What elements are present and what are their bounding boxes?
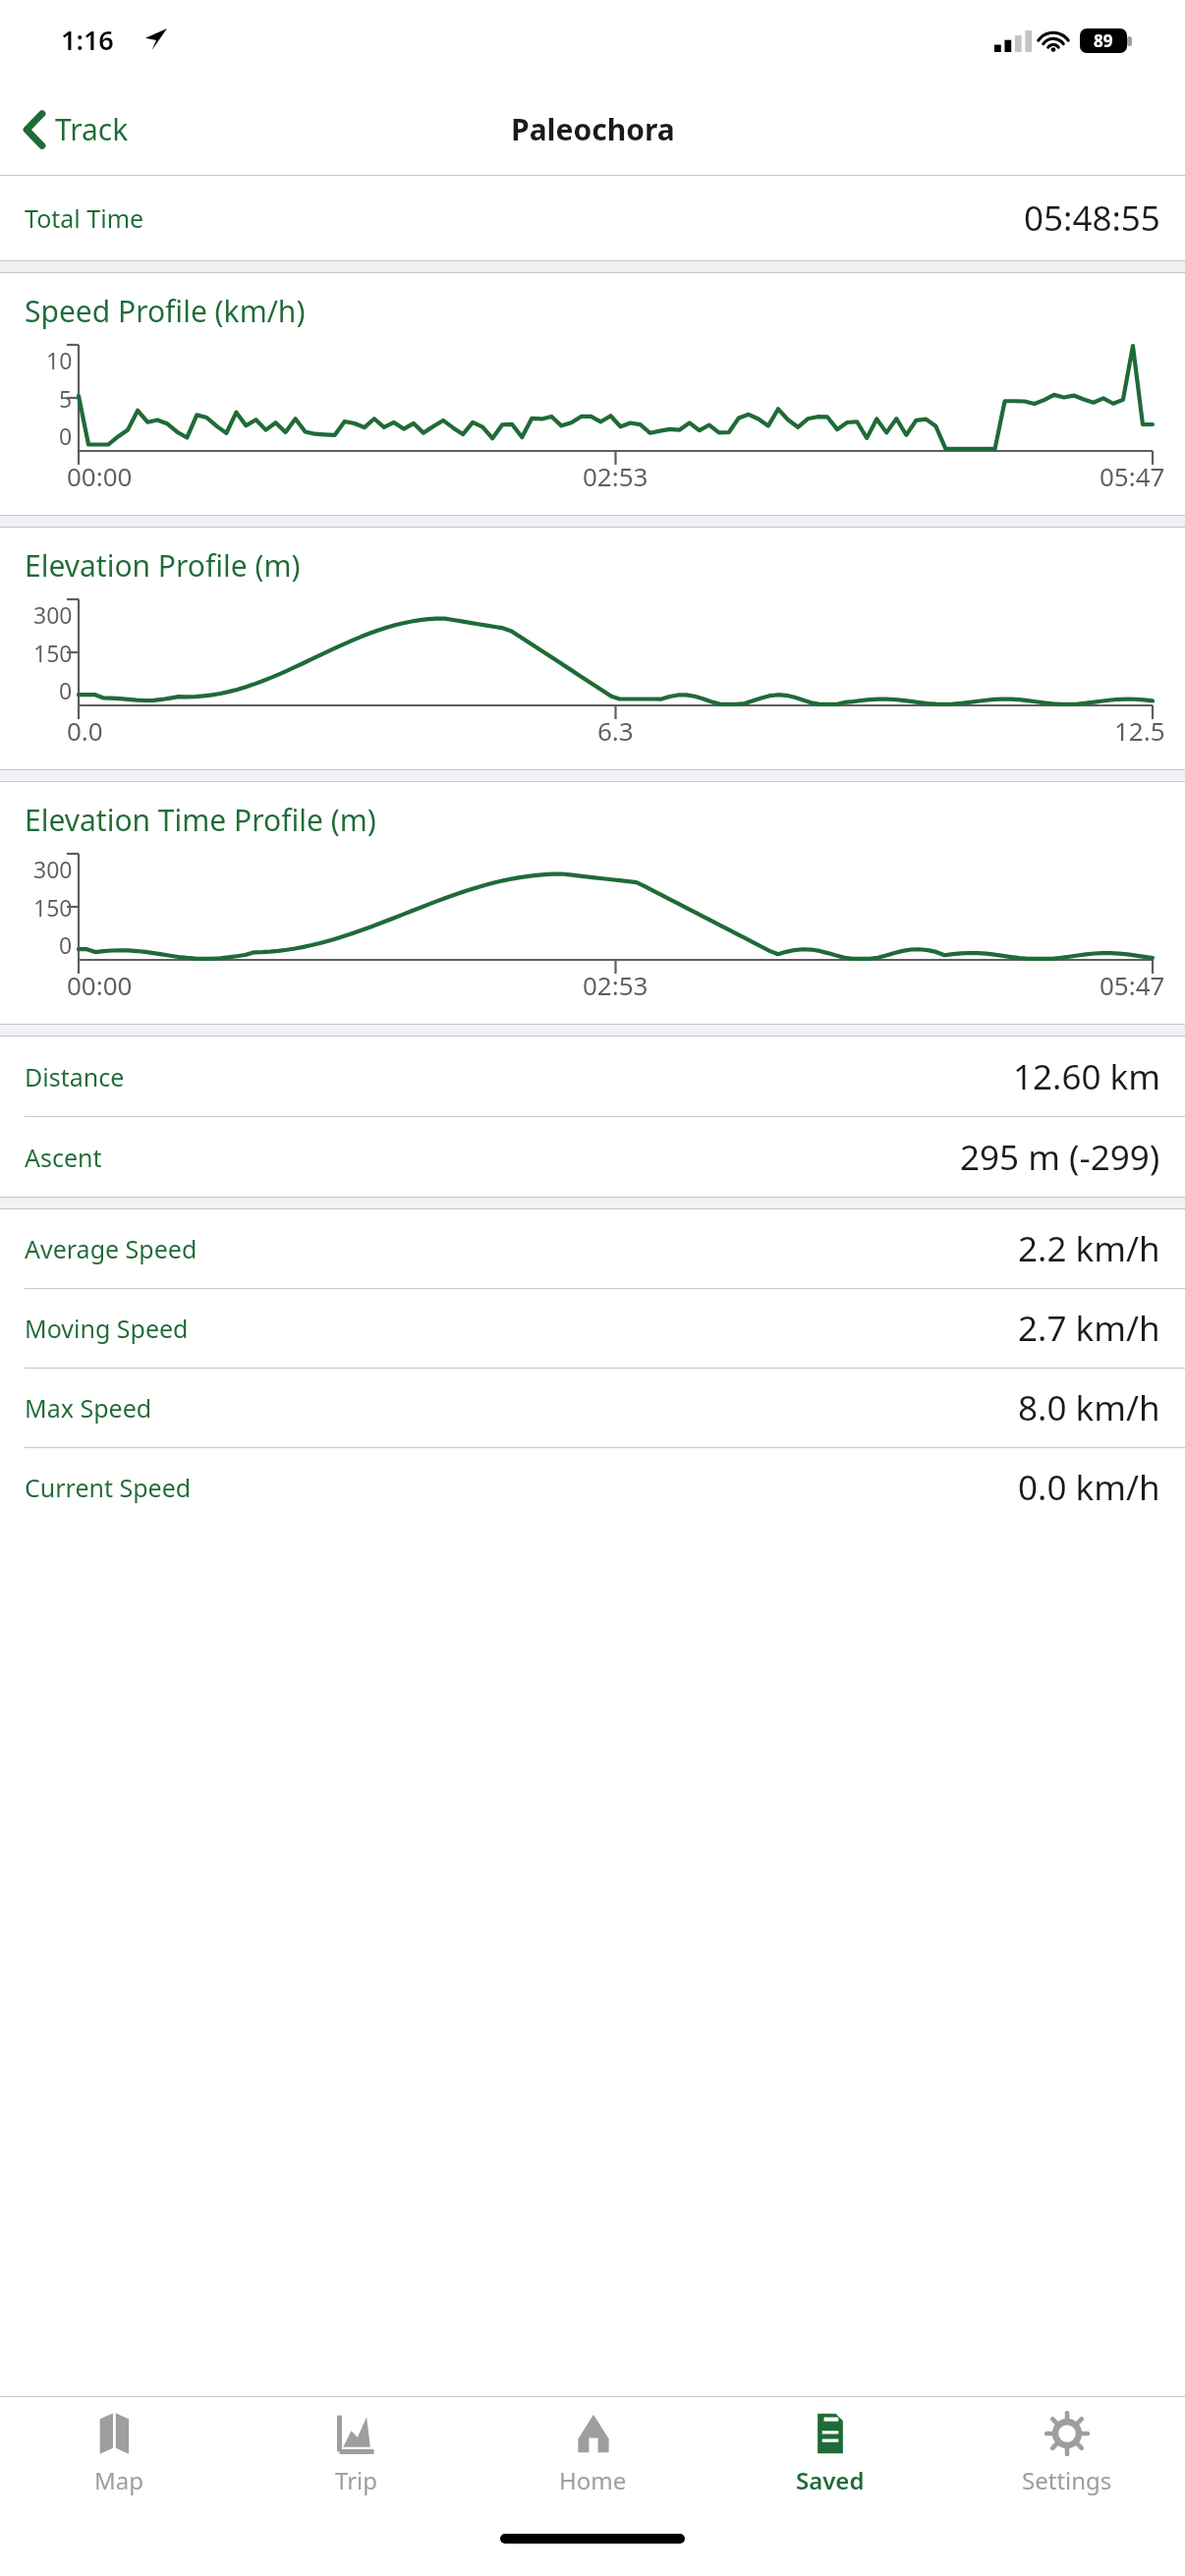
staticText: 10	[46, 345, 73, 375]
staticText: Total Time	[25, 201, 144, 235]
staticText: 02:53	[583, 459, 649, 493]
staticText: 150	[33, 892, 73, 923]
staticText: 12.60 km	[1013, 1053, 1160, 1100]
button[interactable]: Max Speed	[0, 1369, 1185, 1447]
button[interactable]: Track	[18, 101, 135, 157]
staticText: Trip	[335, 2464, 378, 2496]
staticText: 89	[1094, 29, 1113, 52]
staticText: 300	[33, 599, 73, 630]
staticText: 2.2 km/h	[1018, 1225, 1160, 1272]
button[interactable]: Distance	[0, 1036, 1185, 1116]
staticText: 8.0 km/h	[1018, 1384, 1160, 1431]
button[interactable]: Total Time	[0, 176, 1185, 260]
staticText: Saved	[796, 2464, 865, 2496]
staticText: 12.5	[1114, 713, 1165, 748]
staticText: Speed Profile (km/h)	[25, 291, 306, 331]
staticText: 02:53	[583, 968, 649, 1002]
staticText: Ascent	[25, 1141, 102, 1174]
staticText: Current Speed	[25, 1471, 192, 1504]
staticText: 5	[59, 383, 73, 414]
staticText: 2.7 km/h	[1018, 1305, 1160, 1352]
staticText: 0	[59, 420, 73, 451]
staticText: Moving Speed	[25, 1312, 189, 1345]
staticText: Max Speed	[25, 1391, 152, 1425]
button[interactable]: Trip	[238, 2411, 475, 2520]
staticText: Map	[94, 2464, 143, 2496]
staticText: Distance	[25, 1060, 125, 1093]
staticText: Elevation Profile (m)	[25, 545, 301, 586]
staticText: 295 m (-299)	[960, 1134, 1160, 1181]
staticText: 05:47	[1100, 968, 1165, 1002]
staticText: 1:16	[61, 22, 114, 58]
staticText: Paleochora	[511, 109, 675, 149]
staticText: Home	[559, 2464, 627, 2496]
staticText: 05:47	[1100, 459, 1165, 493]
staticText: 00:00	[67, 968, 133, 1002]
button[interactable]: Map	[0, 2411, 238, 2520]
button[interactable]: Saved	[711, 2411, 948, 2520]
staticText: 05:48:55	[1024, 195, 1160, 242]
button[interactable]: Home	[475, 2411, 711, 2520]
staticText: 300	[33, 854, 73, 884]
button[interactable]: Settings	[948, 2411, 1185, 2520]
button[interactable]: Moving Speed	[0, 1289, 1185, 1368]
staticText: Settings	[1022, 2464, 1112, 2496]
button[interactable]: Speed Profile (km/h)	[0, 273, 1185, 515]
staticText: 0.0	[67, 713, 103, 748]
button[interactable]: Average Speed	[0, 1209, 1185, 1288]
staticText: 6.3	[597, 713, 634, 748]
staticText: 0.0 km/h	[1018, 1464, 1160, 1511]
staticText: Track	[55, 109, 129, 149]
staticText: 00:00	[67, 459, 133, 493]
staticText: Average Speed	[25, 1232, 197, 1265]
staticText: 150	[33, 638, 73, 668]
staticText: 0	[59, 929, 73, 960]
button[interactable]: Current Speed	[0, 1448, 1185, 1527]
button[interactable]: Elevation Profile (m)	[0, 528, 1185, 769]
staticText: 0	[59, 675, 73, 705]
button[interactable]: Ascent	[0, 1117, 1185, 1197]
button[interactable]: Elevation Time Profile (m)	[0, 782, 1185, 1024]
staticText: Elevation Time Profile (m)	[25, 800, 376, 840]
